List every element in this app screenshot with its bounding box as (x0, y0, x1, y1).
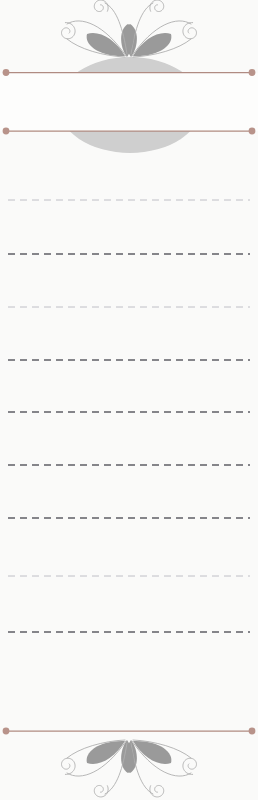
button[interactable]: Decorative ruled note page (0, 0, 258, 800)
